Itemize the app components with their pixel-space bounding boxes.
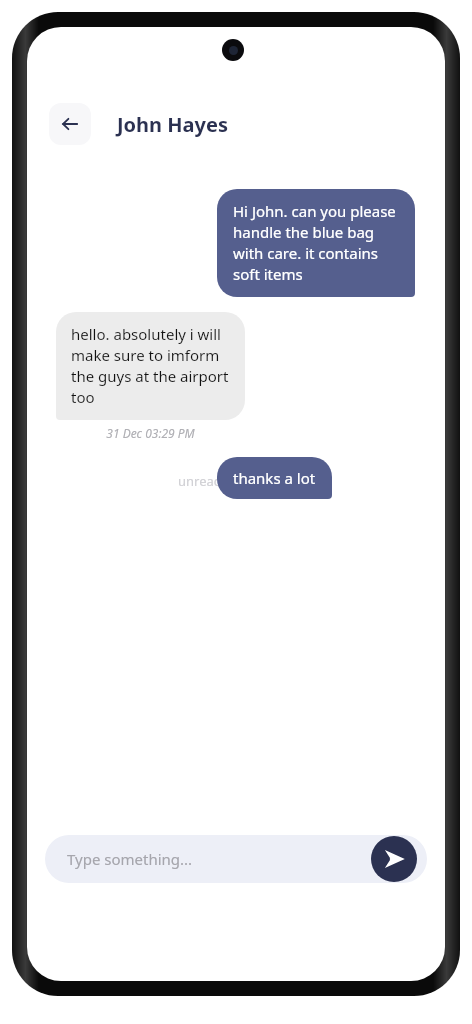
staticText: thanks a lot — [233, 468, 316, 488]
button[interactable]: thanks a lot — [217, 457, 332, 499]
staticText: John Hayes — [117, 111, 228, 138]
button[interactable]: hello. absolutely i will make sure to im… — [56, 312, 245, 420]
staticText: hello. absolutely i will make sure to im… — [71, 324, 230, 408]
button[interactable]: Type something... — [45, 835, 427, 883]
staticText: Type something... — [67, 849, 193, 869]
staticText: unread — [178, 472, 222, 490]
button[interactable]: Send — [371, 836, 417, 882]
staticText: Hi John. can you please handle the blue … — [233, 201, 399, 285]
button[interactable]: Hi John. can you please handle the blue … — [217, 189, 415, 297]
staticText: 31 Dec 03:29 PM — [106, 425, 195, 441]
button[interactable]: Back — [49, 103, 91, 145]
